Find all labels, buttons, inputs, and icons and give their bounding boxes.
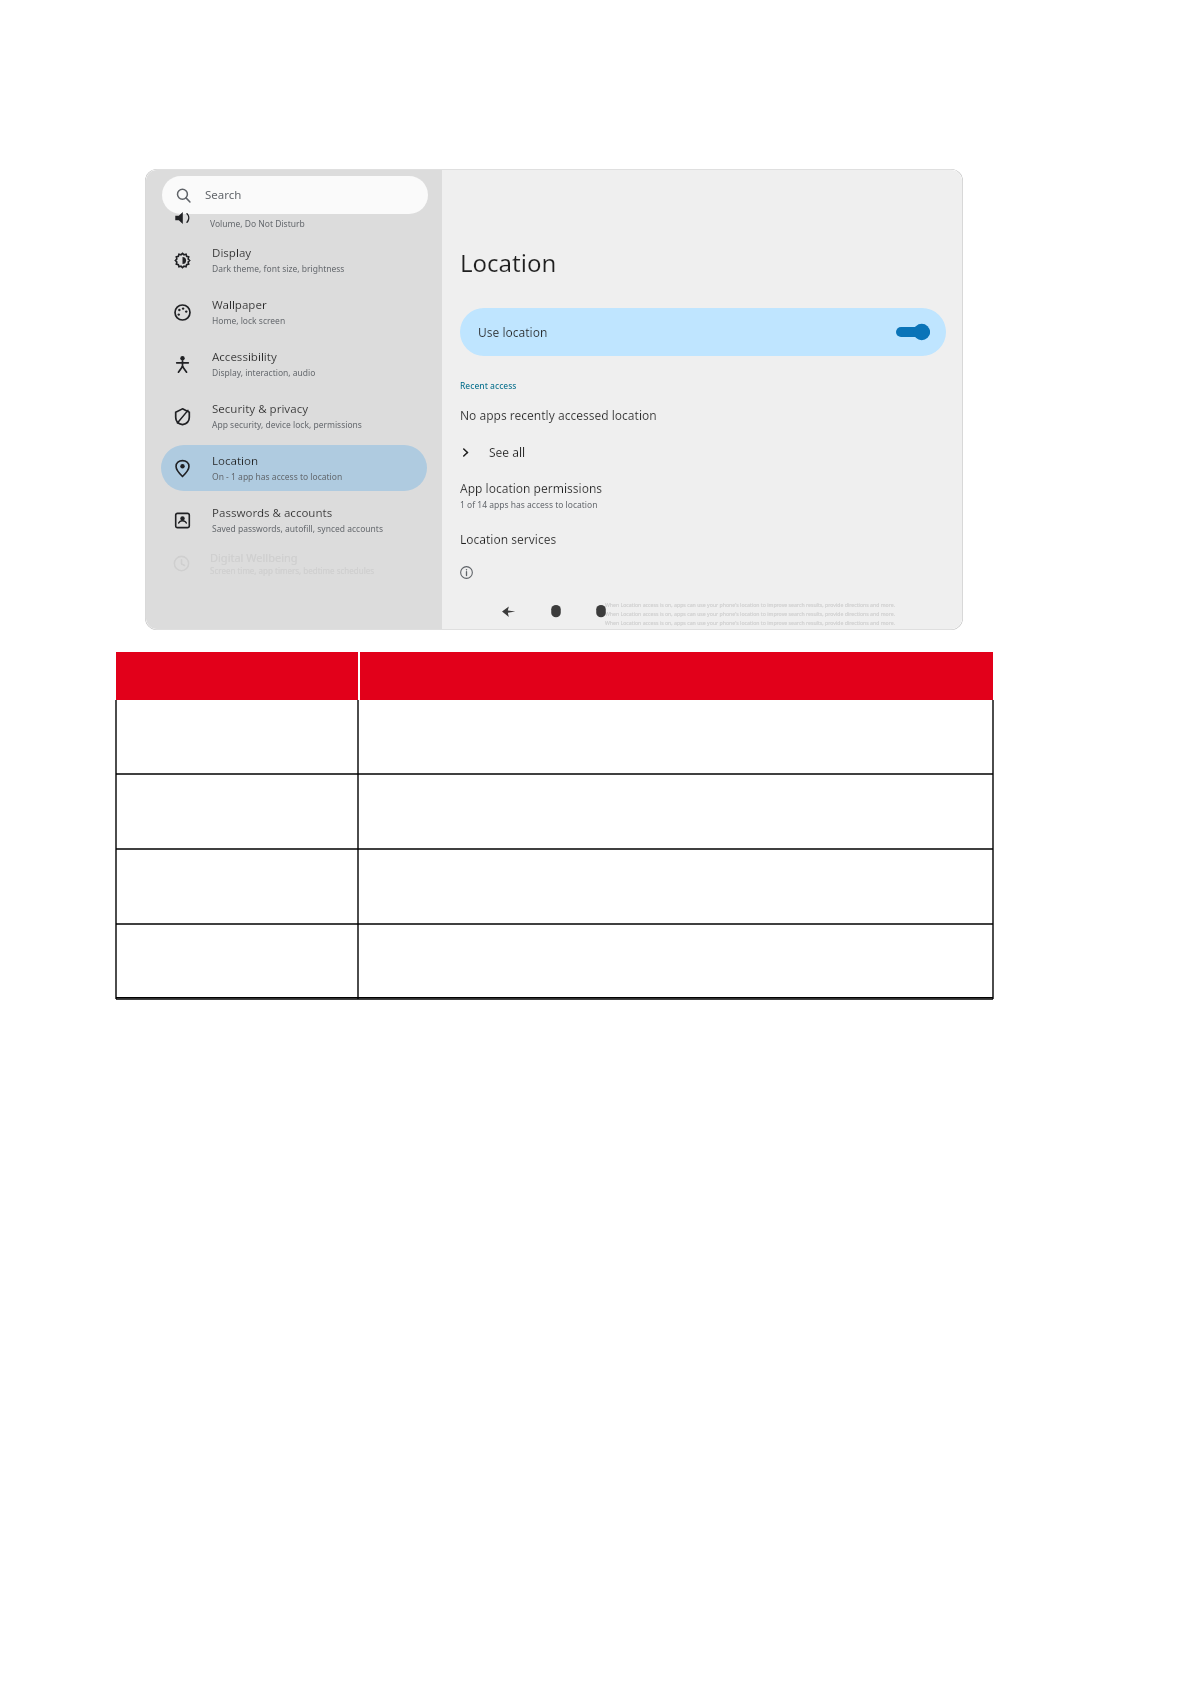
button[interactable]: Display bbox=[161, 237, 427, 283]
staticText: App security, device lock, permissions bbox=[212, 419, 362, 431]
button[interactable]: See all bbox=[460, 439, 946, 465]
button[interactable]: Recents bbox=[594, 604, 608, 618]
staticText: Display, interaction, audio bbox=[212, 367, 316, 379]
staticText: See all bbox=[489, 444, 526, 460]
button[interactable]: Wallpaper bbox=[161, 289, 427, 335]
button[interactable]: Location services bbox=[460, 531, 557, 547]
button[interactable]: Use location bbox=[460, 308, 946, 356]
button[interactable]: Volume, Do Not Disturb bbox=[146, 214, 442, 234]
staticText: Screen time, app timers, bedtime schedul… bbox=[210, 565, 375, 576]
staticText: When Location access is on, apps can use… bbox=[605, 619, 896, 626]
staticText: Passwords & accounts bbox=[212, 505, 333, 521]
staticText: App location permissions bbox=[460, 480, 603, 496]
button[interactable]: Home bbox=[549, 604, 563, 618]
staticText: Location bbox=[212, 453, 259, 469]
staticText: Security & privacy bbox=[212, 401, 309, 417]
staticText: Accessibility bbox=[212, 349, 277, 365]
staticText: Saved passwords, autofill, synced accoun… bbox=[212, 523, 383, 535]
staticText: Display bbox=[212, 245, 252, 261]
button[interactable]: Location bbox=[161, 445, 427, 491]
button[interactable]: Back bbox=[500, 603, 517, 620]
staticText: Recent access bbox=[460, 380, 517, 392]
staticText: No apps recently accessed location bbox=[460, 407, 657, 423]
staticText: Volume, Do Not Disturb bbox=[210, 218, 305, 230]
staticText: Location bbox=[460, 246, 557, 279]
button[interactable]: Information bbox=[460, 566, 473, 579]
staticText: Wallpaper bbox=[212, 297, 267, 313]
button[interactable]: Accessibility bbox=[161, 341, 427, 387]
staticText: Use location bbox=[478, 324, 548, 340]
button[interactable]: Security & privacy bbox=[161, 393, 427, 439]
staticText: When Location access is on, apps can use… bbox=[605, 601, 896, 608]
staticText: Home, lock screen bbox=[212, 315, 286, 327]
button[interactable]: App location permissions bbox=[460, 480, 946, 511]
staticText: When Location access is on, apps can use… bbox=[605, 610, 896, 617]
staticText: On - 1 app has access to location bbox=[212, 471, 343, 483]
staticText: Dark theme, font size, brightness bbox=[212, 263, 345, 275]
button[interactable]: Search bbox=[162, 176, 428, 214]
staticText: 1 of 14 apps has access to location bbox=[460, 499, 598, 511]
staticText: Search bbox=[205, 187, 242, 203]
staticText: Digital Wellbeing bbox=[210, 550, 298, 565]
button[interactable]: Passwords & accounts bbox=[161, 497, 427, 543]
